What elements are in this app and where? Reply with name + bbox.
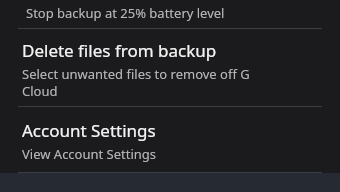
button[interactable]: Stop backup at 25% battery level bbox=[0, 0, 340, 28]
button[interactable]: Account Settings bbox=[0, 107, 340, 172]
button[interactable]: Delete files from backup bbox=[0, 29, 340, 106]
staticText: View Account Settings bbox=[22, 145, 157, 163]
staticText: Delete files from backup bbox=[22, 39, 217, 62]
staticText: Select unwanted files to remove off G Cl… bbox=[22, 65, 274, 100]
staticText: Account Settings bbox=[22, 119, 156, 142]
staticText: Stop backup at 25% battery level bbox=[26, 4, 225, 22]
